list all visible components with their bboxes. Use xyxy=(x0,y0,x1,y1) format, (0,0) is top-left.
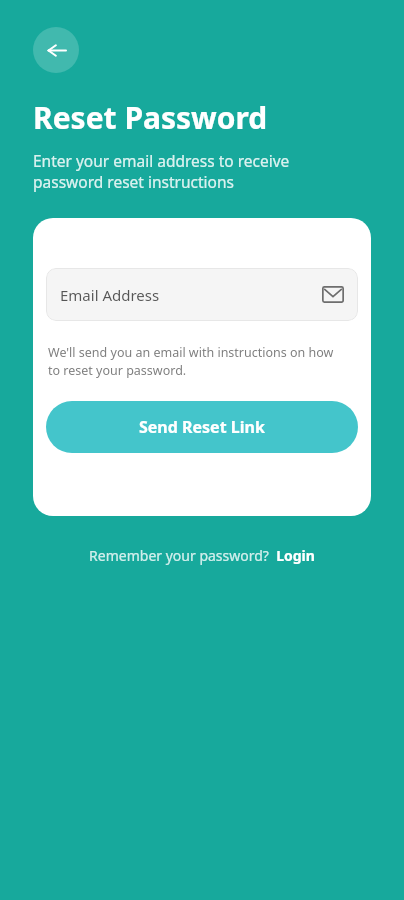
staticText: We'll send you an email with instruction… xyxy=(48,344,334,379)
button[interactable]: Remember your password? Login xyxy=(77,540,327,571)
staticText: Send Reset Link xyxy=(139,416,265,438)
button[interactable]: Send Reset Link xyxy=(46,401,358,453)
staticText: Email Address xyxy=(60,285,160,305)
staticText: Remember your password? Login xyxy=(89,546,315,565)
staticText: Reset Password xyxy=(33,97,268,138)
button[interactable]: Email Address xyxy=(46,268,358,321)
staticText: Enter your email address to receive pass… xyxy=(33,150,290,193)
button[interactable]: Back xyxy=(33,27,79,73)
